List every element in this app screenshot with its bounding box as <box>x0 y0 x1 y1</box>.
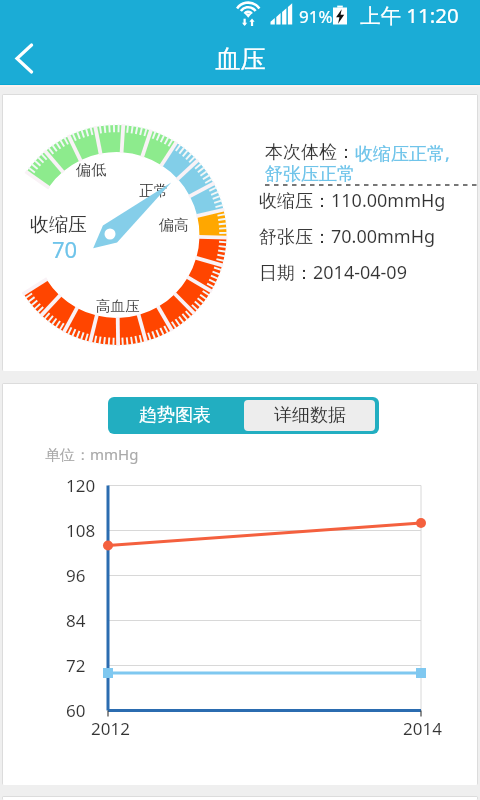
staticText: 单位：mmHg <box>45 444 139 464</box>
staticText: 120 <box>66 474 96 497</box>
staticText: 108 <box>66 519 96 542</box>
staticText: 高血压 <box>96 297 140 315</box>
staticText: 本次体检： <box>265 141 355 164</box>
staticText: 84 <box>66 609 86 632</box>
staticText: 偏高 <box>159 216 189 235</box>
staticText: 收缩压正常, <box>355 141 450 166</box>
staticText: 2014 <box>403 717 442 740</box>
staticText: 60 <box>66 699 86 722</box>
staticText: 96 <box>66 564 86 587</box>
button[interactable]: 趋势图表 <box>108 397 241 434</box>
staticText: 上午 11:20 <box>360 1 459 29</box>
staticText: 舒张压正常 <box>265 163 355 186</box>
button[interactable]: 详细数据 <box>244 400 375 431</box>
button[interactable]: Back <box>0 34 48 82</box>
staticText: 收缩压：110.00mmHg <box>259 188 446 213</box>
staticText: 日期：2014-04-09 <box>259 260 407 285</box>
staticText: 正常 <box>139 182 169 201</box>
staticText: 70 <box>52 234 78 264</box>
staticText: 收缩压 <box>30 213 87 237</box>
staticText: 72 <box>66 654 86 677</box>
staticText: 91% <box>299 5 333 28</box>
staticText: 2012 <box>91 717 130 740</box>
staticText: 偏低 <box>76 161 106 180</box>
staticText: 趋势图表 <box>139 404 211 427</box>
staticText: 舒张压：70.00mmHg <box>259 224 436 249</box>
staticText: 详细数据 <box>274 404 346 427</box>
staticText: 血压 <box>215 43 266 75</box>
